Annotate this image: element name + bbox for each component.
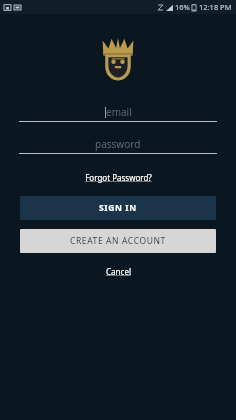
staticText: CREATE AN ACCOUNT [70, 235, 166, 247]
staticText: SIGN IN [99, 202, 137, 214]
button[interactable]: CREATE AN ACCOUNT [20, 229, 216, 253]
staticText: 12:18 PM [199, 2, 232, 12]
staticText: Forgot Password? [85, 172, 152, 183]
staticText: 16% [175, 2, 190, 12]
staticText: password [95, 137, 141, 151]
button[interactable]: Forgot Password? [0, 168, 236, 187]
staticText: Cancel [106, 266, 131, 277]
staticText: email [106, 105, 132, 119]
button[interactable]: email [19, 104, 217, 119]
button[interactable]: SIGN IN [20, 196, 216, 220]
button[interactable]: Cancel [0, 263, 236, 280]
button[interactable]: password [19, 136, 217, 151]
